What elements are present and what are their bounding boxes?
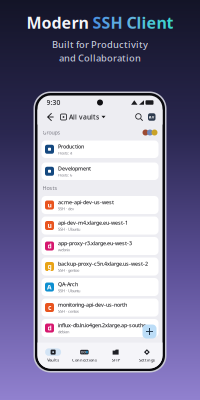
- button[interactable]: d: [41, 237, 158, 255]
- staticText: SSH · Ubuntu: [58, 288, 80, 293]
- button[interactable]: Add host: [142, 324, 156, 338]
- staticText: [88, 12, 92, 33]
- staticText: app-proxy-r3.xlarge.eu-west-3: [58, 240, 132, 247]
- staticText: QA-Arch: [58, 281, 78, 288]
- staticText: 9:30: [46, 98, 60, 107]
- button[interactable]: All vaults: [60, 113, 105, 121]
- button[interactable]: Vaults: [37, 342, 69, 368]
- staticText: Connections: [72, 357, 97, 363]
- staticText: backup-proxy-c5n.4xlarge.us-west-2: [58, 260, 148, 267]
- staticText: d: [47, 242, 51, 250]
- staticText: All vaults: [69, 113, 99, 121]
- staticText: S: [101, 12, 110, 33]
- button[interactable]: Settings: [131, 342, 162, 368]
- staticText: and Collaboration: [59, 52, 141, 64]
- staticText: Vaults: [47, 357, 59, 363]
- staticText: Hosts: 6: [58, 172, 72, 178]
- staticText: u: [47, 201, 51, 209]
- button[interactable]: g: [41, 257, 158, 275]
- staticText: u: [47, 221, 51, 230]
- staticText: Groups: [42, 129, 60, 136]
- staticText: e: [146, 12, 156, 33]
- button[interactable]: Production: [41, 140, 158, 158]
- button[interactable]: c: [41, 298, 158, 316]
- button[interactable]: Search: [133, 111, 145, 123]
- button[interactable]: u: [41, 216, 158, 234]
- staticText: Settings: [139, 357, 155, 363]
- staticText: api-dev-m4.xlarge.eu-west-1: [58, 219, 128, 226]
- staticText: Modern: [26, 12, 88, 33]
- button[interactable]: A: [41, 278, 158, 296]
- button[interactable]: d: [41, 319, 158, 337]
- staticText: i: [141, 12, 146, 33]
- staticText: SSH · gentoo: [58, 268, 79, 273]
- button[interactable]: Account: [148, 113, 155, 121]
- button[interactable]: Connections: [69, 342, 100, 368]
- staticText: C: [126, 12, 136, 33]
- staticText: H: [110, 12, 122, 33]
- staticText: acme-api-dev-us-west: [58, 199, 114, 206]
- staticText: SSH · centos: [58, 309, 79, 314]
- staticText: SSH · dev: [58, 206, 74, 211]
- staticText: l: [136, 12, 141, 33]
- staticText: monitoring-api-dev-us-north: [58, 301, 127, 308]
- staticText: AV: [149, 114, 155, 120]
- staticText: c: [48, 303, 51, 312]
- staticText: influx-db.ln.io4gen.2xlarge.ap-southeast: [58, 322, 151, 329]
- button[interactable]: Back: [44, 111, 56, 123]
- staticText: t: [166, 12, 173, 33]
- staticText: SSH · Ubuntu: [58, 227, 80, 232]
- staticText: SFTP: [112, 357, 120, 363]
- staticText: A: [47, 283, 52, 291]
- staticText: d: [47, 324, 51, 332]
- staticText: Hosts: [42, 184, 57, 192]
- button[interactable]: Development: [41, 162, 158, 180]
- staticText: g: [47, 262, 51, 271]
- staticText: Development: [58, 165, 91, 172]
- staticText: Built for Productivity: [52, 38, 148, 51]
- button[interactable]: u: [41, 196, 158, 214]
- staticText: S: [92, 12, 101, 33]
- staticText: webnix: [58, 247, 70, 252]
- staticText: Hosts: 4: [58, 150, 72, 156]
- staticText: Production: [58, 143, 84, 150]
- staticText: n: [156, 12, 166, 33]
- button[interactable]: SFTP: [100, 342, 131, 368]
- staticText: debian: [58, 329, 69, 334]
